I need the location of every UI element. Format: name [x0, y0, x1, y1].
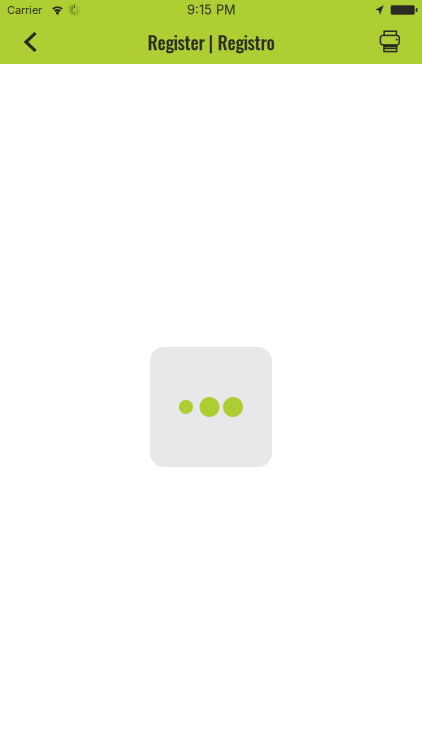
staticText: Carrier	[7, 3, 42, 17]
staticText: 9:15 PM	[187, 2, 235, 18]
button[interactable]: Print	[364, 20, 422, 64]
staticText: Register | Registro	[147, 29, 274, 55]
button[interactable]: Back	[0, 20, 55, 64]
